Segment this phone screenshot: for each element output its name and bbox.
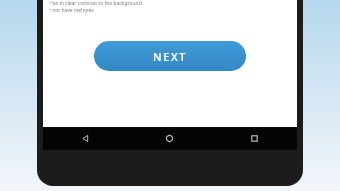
button[interactable]: Recent apps [212,127,297,150]
staticText: • not have red eyes [49,7,94,14]
button[interactable]: Home [127,127,212,150]
button[interactable]: NEXT [94,41,246,71]
staticText: • be in clear contrast to the background [49,0,142,6]
staticText: NEXT [153,49,187,64]
button[interactable]: Back [43,127,127,150]
